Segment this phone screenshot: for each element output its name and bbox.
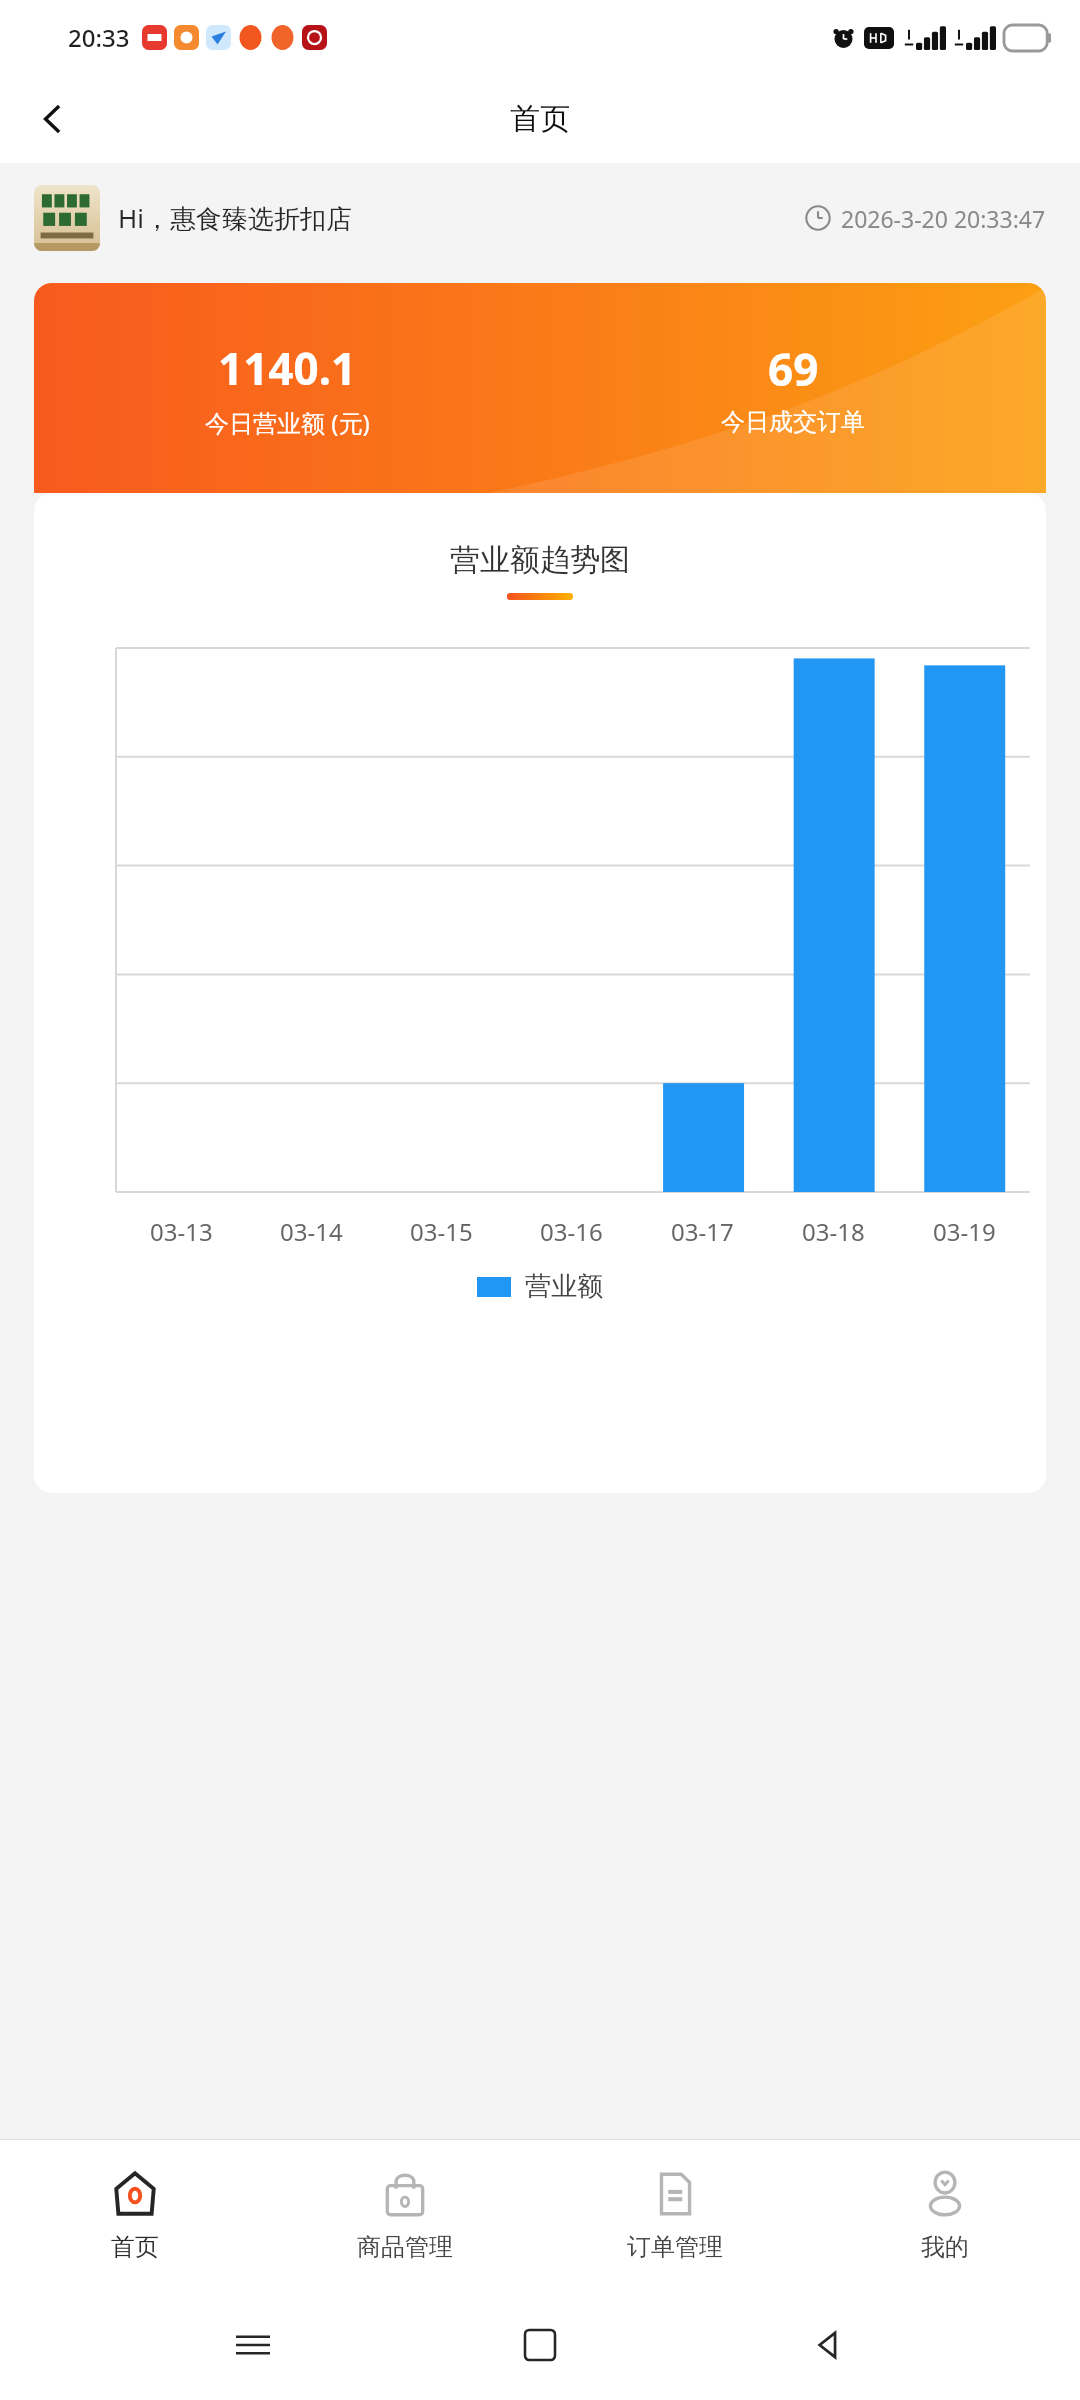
staticText: 03-13 [150,1215,213,1248]
button[interactable]: 订单管理 [540,2140,810,2290]
staticText: 03-19 [933,1215,996,1248]
button[interactable]: 1140.1 [34,283,1046,493]
staticText: 03-17 [671,1215,734,1248]
staticText: 营业额趋势图 [450,541,630,579]
staticText: 商品管理 [357,2232,453,2262]
button[interactable]: Recents [218,2310,288,2380]
staticText: 03-15 [410,1215,473,1248]
staticText: 69 [768,339,819,399]
staticText: 20:33 [68,21,130,54]
button[interactable]: 我的 [810,2140,1080,2290]
staticText: 03-18 [802,1215,865,1248]
button[interactable]: 商品管理 [270,2140,540,2290]
button[interactable]: Home [505,2310,575,2380]
staticText: 营业额 [525,1270,603,1303]
staticText: Hi，惠食臻选折扣店 [118,200,352,236]
staticText: 首页 [111,2232,159,2262]
button[interactable]: Back [22,88,84,150]
button[interactable]: Back [793,2310,863,2380]
staticText: 1140.1 [218,338,357,398]
staticText: 我的 [921,2232,969,2262]
staticText: 2026-3-20 20:33:47 [841,203,1046,234]
staticText: 订单管理 [627,2232,723,2262]
staticText: 首页 [510,100,570,138]
staticText: 03-14 [280,1215,343,1248]
button[interactable]: 首页 [0,2140,270,2290]
staticText: 03-16 [540,1215,603,1248]
staticText: 今日成交订单 [721,407,865,437]
staticText: 今日营业额 (元) [205,406,370,439]
